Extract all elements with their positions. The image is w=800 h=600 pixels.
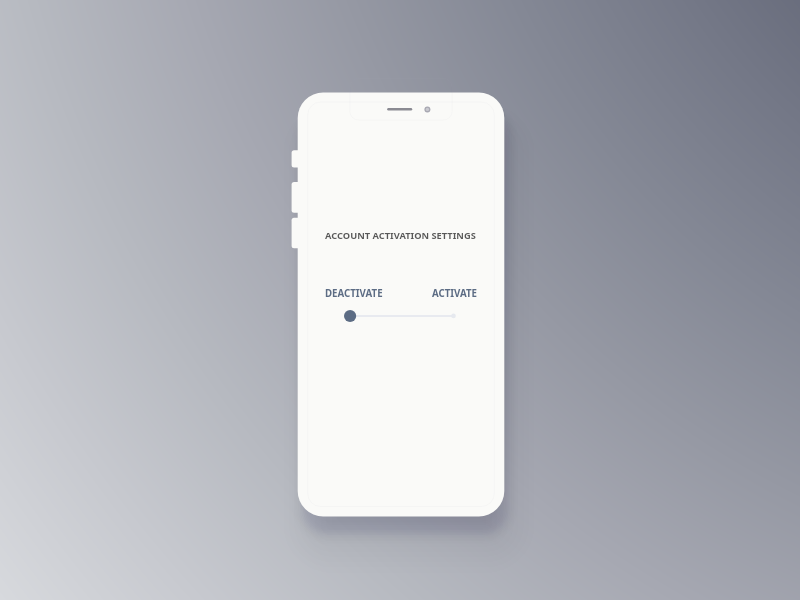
- staticText: ACTIVATE: [432, 287, 478, 300]
- button[interactable]: Activation slider: [341, 306, 463, 326]
- staticText: ACCOUNT ACTIVATION SETTINGS: [325, 229, 476, 242]
- button[interactable]: ACTIVATE: [432, 287, 478, 300]
- button[interactable]: DEACTIVATE: [325, 287, 383, 300]
- staticText: DEACTIVATE: [325, 287, 383, 300]
